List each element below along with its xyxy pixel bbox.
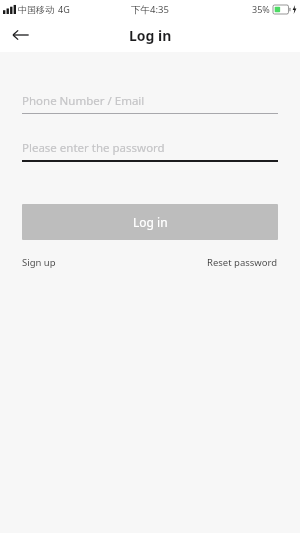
button[interactable]: Sign up <box>22 256 56 269</box>
button[interactable]: Reset password <box>207 256 278 269</box>
staticText: 中国移动 <box>18 4 54 15</box>
staticText: Log in <box>133 214 168 230</box>
button[interactable]: Back <box>0 18 40 52</box>
staticText: Phone Number / Email <box>22 93 145 109</box>
staticText: 4G <box>58 3 70 15</box>
button[interactable]: Phone Number / Email <box>22 88 278 114</box>
staticText: Sign up <box>22 256 56 269</box>
button[interactable]: Log in <box>22 204 278 240</box>
staticText: Log in <box>129 26 172 45</box>
staticText: Please enter the password <box>22 140 165 156</box>
staticText: Reset password <box>207 256 278 269</box>
staticText: 35% <box>252 3 270 15</box>
button[interactable]: Please enter the password <box>22 135 278 162</box>
staticText: 下午4:35 <box>131 3 169 16</box>
